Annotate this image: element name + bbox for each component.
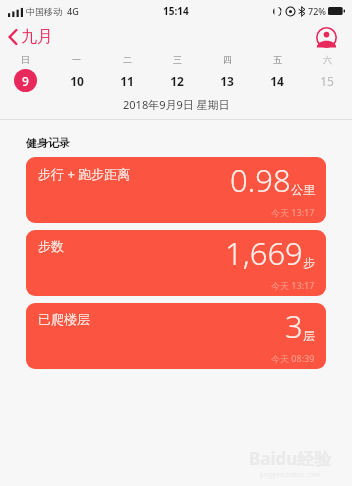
staticText: 三 [173, 54, 182, 65]
staticText: 今天 08:39 [271, 352, 315, 364]
button[interactable]: 步行 + 跑步距离 [26, 157, 326, 223]
staticText: 层 [303, 328, 315, 343]
staticText: 健身记录 [26, 136, 70, 150]
staticText: 二 [123, 54, 132, 65]
staticText: 一 [72, 54, 81, 65]
staticText: 10 [70, 73, 84, 89]
staticText: 13 [220, 73, 234, 89]
staticText: 14 [270, 73, 284, 89]
staticText: 日 [21, 54, 30, 65]
staticText: 11 [120, 73, 134, 89]
staticText: 0.98 [230, 159, 291, 201]
staticText: 五 [273, 54, 282, 65]
staticText: Baidu经验 [249, 447, 332, 470]
button[interactable]: 已爬楼层 [26, 303, 326, 369]
staticText: 四 [223, 54, 232, 65]
staticText: 72% [308, 5, 326, 17]
button[interactable]: 9 [0, 68, 51, 93]
staticText: 1,669 [225, 232, 303, 274]
staticText: 9 [22, 73, 29, 89]
staticText: 步行 + 跑步距离 [38, 165, 131, 183]
staticText: 15 [320, 73, 334, 89]
staticText: 今天 13:17 [271, 279, 315, 291]
staticText: 中国移动 [26, 6, 62, 17]
staticText: 今天 13:17 [271, 206, 315, 218]
staticText: 公里 [291, 182, 315, 197]
staticText: 15:14 [163, 4, 189, 18]
staticText: 3 [285, 305, 303, 347]
button[interactable]: 步数 [26, 230, 326, 296]
staticText: 步数 [38, 238, 64, 254]
staticText: jingyan.baidu.com [260, 470, 321, 480]
staticText: 已爬楼层 [38, 311, 90, 327]
staticText: 2018年9月9日 星期日 [123, 97, 230, 112]
staticText: 步 [303, 255, 315, 270]
button[interactable]: Profile [314, 25, 338, 49]
button[interactable]: 12 [152, 68, 202, 93]
button[interactable]: 13 [202, 68, 252, 93]
staticText: 九月 [21, 27, 53, 47]
button[interactable]: 11 [102, 68, 152, 93]
staticText: 4G [67, 5, 79, 17]
button[interactable]: 15 [302, 68, 352, 93]
button[interactable]: 九月 [0, 24, 63, 50]
button[interactable]: 10 [51, 68, 102, 93]
button[interactable]: 14 [252, 68, 302, 93]
staticText: 12 [170, 73, 184, 89]
staticText: 六 [323, 54, 332, 65]
